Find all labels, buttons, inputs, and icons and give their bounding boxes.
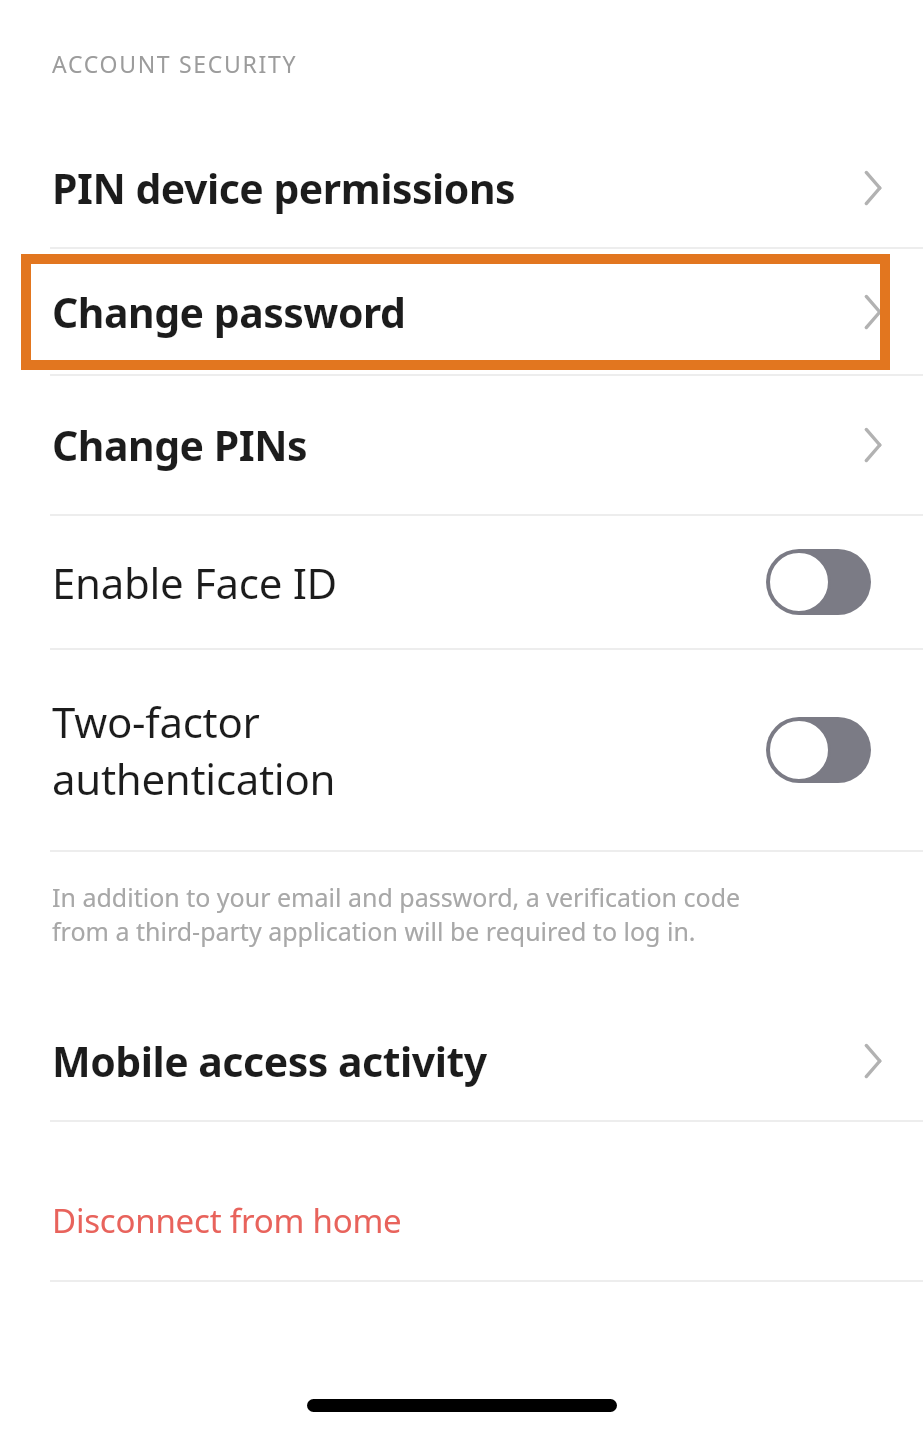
button[interactable]: PIN device permissions	[0, 129, 923, 247]
staticText: Change PINs	[52, 417, 859, 473]
staticText: PIN device permissions	[52, 160, 859, 216]
button[interactable]: Enable Face ID	[0, 516, 923, 648]
button[interactable]: Disconnect from home	[0, 1160, 923, 1280]
other: Open Change password	[859, 291, 885, 333]
other: Open PIN device permissions	[859, 167, 885, 209]
staticText: authentication	[52, 750, 336, 807]
other: Open Change PINs	[859, 424, 885, 466]
staticText: Enable Face ID	[52, 554, 337, 611]
other: Open Mobile access activity	[859, 1040, 885, 1082]
staticText: Change password	[52, 284, 859, 340]
button[interactable]: Change PINs	[0, 376, 923, 514]
button[interactable]: Toggle Two-factor authentication	[766, 717, 871, 783]
staticText: Mobile access activity	[52, 1033, 859, 1089]
button[interactable]: Two-factor	[0, 650, 923, 850]
staticText: In addition to your email and password, …	[52, 880, 741, 914]
button[interactable]: Mobile access activity	[0, 1002, 923, 1120]
staticText: Disconnect from home	[52, 1198, 402, 1243]
other: Home indicator	[307, 1399, 617, 1412]
staticText: from a third-party application will be r…	[52, 914, 696, 948]
button[interactable]: Change password	[0, 249, 923, 374]
staticText: Two-factor	[52, 693, 260, 750]
button[interactable]: Toggle Enable Face ID	[766, 549, 871, 615]
staticText: ACCOUNT SECURITY	[52, 48, 298, 79]
